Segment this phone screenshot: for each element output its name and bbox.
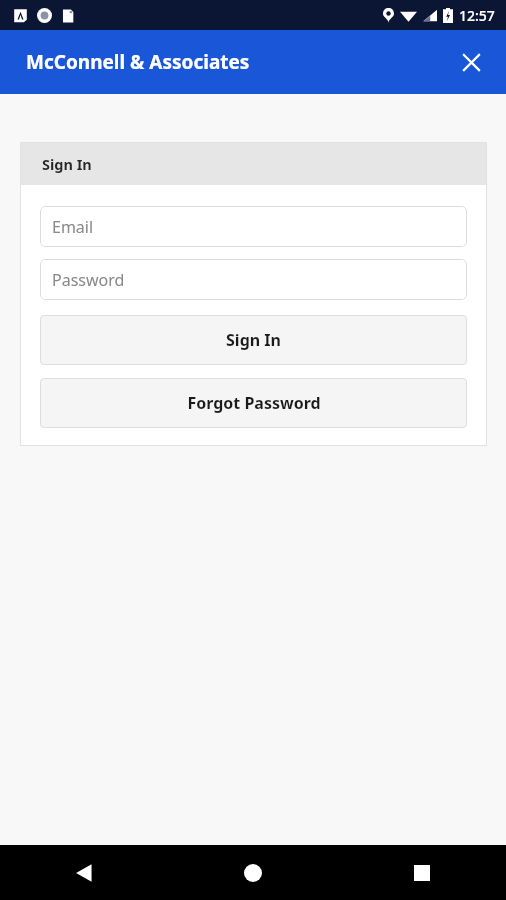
button[interactable]: Home (168, 845, 337, 900)
staticText: 12:57 (459, 6, 495, 25)
button[interactable]: Sign In (40, 315, 467, 365)
staticText: Email (52, 216, 94, 238)
staticText: McConnell & Associates (26, 49, 250, 75)
button[interactable]: Recent apps (337, 845, 506, 900)
button[interactable]: Back (0, 845, 168, 900)
button[interactable]: Password (40, 259, 467, 300)
button[interactable]: Forgot Password (40, 378, 467, 428)
staticText: Password (52, 269, 125, 291)
staticText: Sign In (226, 329, 281, 351)
staticText: Forgot Password (187, 392, 321, 414)
button[interactable]: Close (449, 40, 493, 84)
staticText: Sign In (42, 154, 92, 174)
button[interactable]: Email (40, 206, 467, 247)
